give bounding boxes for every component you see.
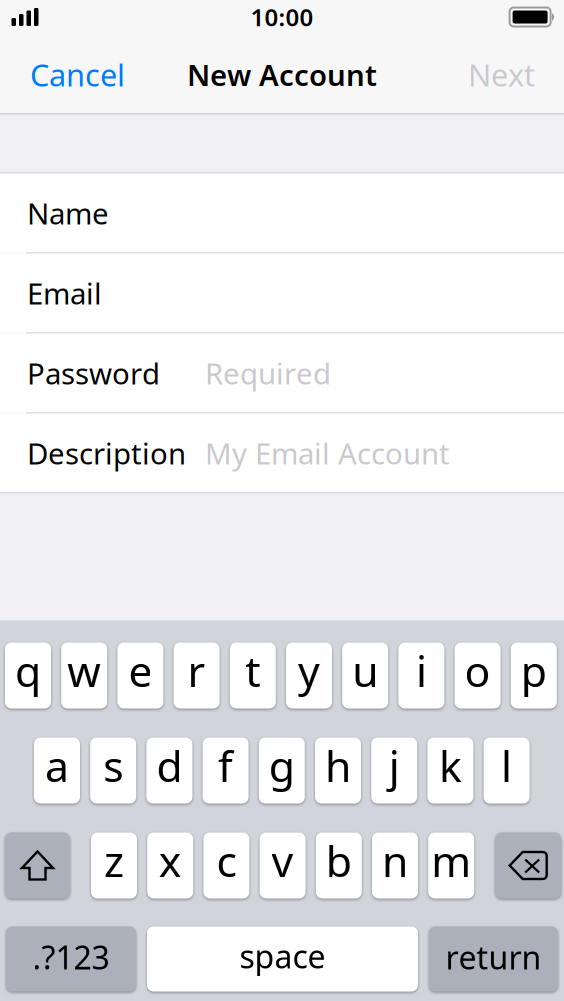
staticText: j — [389, 737, 400, 794]
staticText: e — [128, 642, 152, 699]
staticText: a — [45, 737, 69, 794]
button[interactable]: Password — [0, 333, 564, 412]
staticText: Next — [468, 54, 535, 95]
staticText: l — [501, 737, 512, 794]
button[interactable]: u — [342, 642, 388, 708]
button[interactable]: a — [34, 737, 80, 803]
staticText: o — [465, 642, 491, 699]
staticText: Password — [27, 353, 160, 392]
staticText: s — [103, 737, 123, 794]
button[interactable]: Cancel — [30, 44, 141, 105]
button[interactable]: c — [203, 832, 249, 898]
button[interactable]: b — [316, 832, 362, 898]
staticText: i — [416, 642, 427, 699]
staticText: v — [272, 832, 294, 889]
button[interactable]: j — [371, 737, 417, 803]
staticText: Description — [27, 433, 186, 472]
staticText: My Email Account — [205, 433, 450, 472]
staticText: Cancel — [30, 54, 125, 95]
staticText: w — [67, 642, 101, 699]
button[interactable]: w — [61, 642, 107, 708]
button[interactable]: space — [147, 926, 418, 991]
button[interactable]: v — [260, 832, 306, 898]
button[interactable]: Email — [0, 253, 564, 332]
staticText: Name — [27, 193, 109, 232]
staticText: n — [382, 832, 408, 889]
staticText: return — [445, 936, 541, 978]
button[interactable]: x — [147, 832, 193, 898]
staticText: Email — [27, 273, 102, 312]
staticText: u — [352, 642, 378, 699]
button[interactable]: z — [91, 832, 137, 898]
button[interactable]: e — [117, 642, 163, 708]
staticText: h — [325, 737, 351, 794]
button[interactable]: m — [428, 832, 474, 898]
staticText: 10:00 — [250, 1, 313, 33]
button[interactable]: d — [146, 737, 192, 803]
button[interactable]: Description — [0, 413, 564, 492]
button[interactable]: r — [174, 642, 220, 708]
button[interactable]: return — [429, 926, 558, 991]
staticText: .?123 — [32, 936, 109, 978]
button[interactable]: Next — [452, 44, 535, 105]
staticText: p — [521, 642, 547, 699]
button[interactable]: l — [484, 737, 530, 803]
staticText: f — [218, 737, 233, 794]
staticText: r — [188, 642, 206, 699]
button[interactable]: y — [286, 642, 332, 708]
button[interactable]: f — [203, 737, 249, 803]
staticText: z — [104, 832, 124, 889]
button[interactable]: n — [372, 832, 418, 898]
staticText: c — [216, 832, 236, 889]
staticText: Required — [205, 353, 331, 392]
button[interactable]: p — [511, 642, 557, 708]
staticText: b — [326, 832, 352, 889]
staticText: space — [239, 935, 325, 977]
button[interactable]: s — [90, 737, 136, 803]
button[interactable]: g — [259, 737, 305, 803]
button[interactable]: h — [315, 737, 361, 803]
button[interactable]: t — [230, 642, 276, 708]
staticText: y — [298, 642, 320, 699]
staticText: m — [431, 832, 471, 889]
button[interactable]: i — [398, 642, 444, 708]
button[interactable]: o — [455, 642, 501, 708]
button[interactable]: Shift — [5, 832, 70, 898]
staticText: t — [245, 642, 260, 699]
staticText: New Account — [187, 55, 377, 94]
staticText: q — [15, 642, 41, 699]
button[interactable]: Numbers and symbols — [6, 926, 136, 991]
staticText: d — [156, 737, 182, 794]
button[interactable]: Name — [0, 173, 564, 252]
staticText: x — [159, 832, 182, 889]
staticText: k — [439, 737, 462, 794]
button[interactable]: q — [5, 642, 51, 708]
button[interactable]: k — [427, 737, 473, 803]
button[interactable]: Delete — [495, 832, 561, 898]
staticText: g — [269, 737, 295, 794]
